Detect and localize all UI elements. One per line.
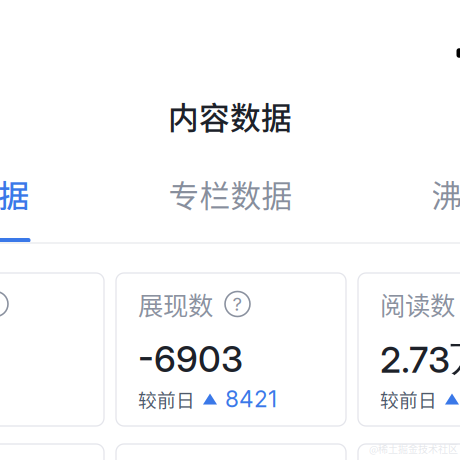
button[interactable]: 文章数据: [0, 179, 99, 242]
staticText: @稀土掘金技术社区: [369, 441, 458, 456]
button[interactable]: 阅读数: [358, 273, 460, 426]
staticText: 8421: [225, 385, 277, 413]
staticText: 文章数据: [0, 172, 29, 216]
button[interactable]: 专栏数据: [99, 179, 362, 242]
staticText: 专栏数据: [168, 172, 292, 216]
button[interactable]: 点赞数: [0, 273, 104, 426]
button[interactable]: 分享数: [358, 444, 460, 460]
staticText: 阅读数: [380, 286, 455, 322]
button[interactable]: 评论数: [0, 444, 104, 460]
staticText: 较前日: [380, 385, 437, 412]
staticText: ?: [232, 293, 242, 315]
staticText: -6903: [138, 337, 243, 381]
staticText: 2.73万: [380, 336, 460, 382]
staticText: 内容数据: [168, 94, 292, 138]
staticText: 沸点数据: [431, 172, 460, 216]
button[interactable]: 收藏数: [116, 444, 346, 460]
staticText: 展现数: [138, 286, 213, 322]
button[interactable]: 展现数: [116, 273, 346, 426]
staticText: 较前日: [138, 385, 195, 412]
button[interactable]: 沸点数据: [362, 179, 460, 242]
